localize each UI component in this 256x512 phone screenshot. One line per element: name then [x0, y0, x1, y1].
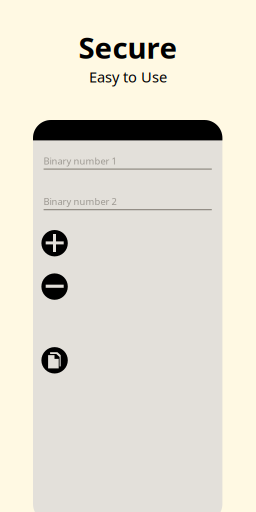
- button[interactable]: Copy result: [41, 347, 68, 373]
- button[interactable]: Binary number 2: [44, 195, 212, 210]
- button[interactable]: Add: [41, 230, 68, 256]
- staticText: Binary number 2: [44, 195, 117, 207]
- staticText: Secure: [78, 28, 177, 67]
- staticText: Easy to Use: [89, 67, 167, 86]
- button[interactable]: Binary number 1: [44, 155, 212, 170]
- button[interactable]: Subtract: [41, 273, 68, 300]
- staticText: Binary number 1: [44, 155, 117, 167]
